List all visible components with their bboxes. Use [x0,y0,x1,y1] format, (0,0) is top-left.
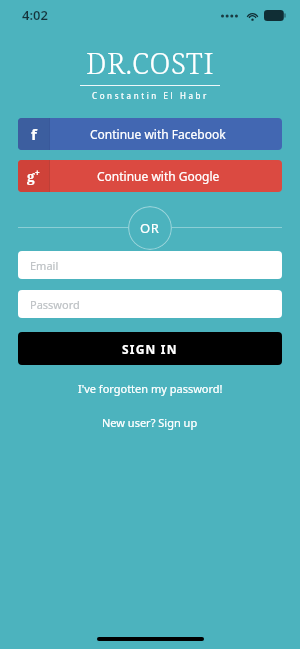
staticText: Password [30,297,80,312]
button[interactable]: I've forgotten my password! [0,378,300,399]
staticText: Email [30,258,59,273]
staticText: g [27,167,35,186]
staticText: Continue with Facebook [90,126,226,142]
button[interactable]: g [18,160,282,192]
staticText: + [35,167,40,178]
staticText: SIGN IN [122,341,178,357]
button[interactable]: Password [18,290,282,318]
staticText: New user? Sign up [102,415,198,430]
staticText: f [31,124,37,144]
staticText: Constantin El Habr [92,90,209,101]
staticText: I've forgotten my password! [78,381,223,396]
staticText: OR [140,219,160,237]
staticText: Continue with Google [97,168,220,184]
button[interactable]: New user? Sign up [0,412,300,433]
staticText: DR.COSTI [86,43,214,82]
button[interactable]: SIGN IN [18,332,282,365]
button[interactable]: Email [18,251,282,279]
staticText: 4:02 [22,6,48,24]
button[interactable]: f [18,118,282,150]
